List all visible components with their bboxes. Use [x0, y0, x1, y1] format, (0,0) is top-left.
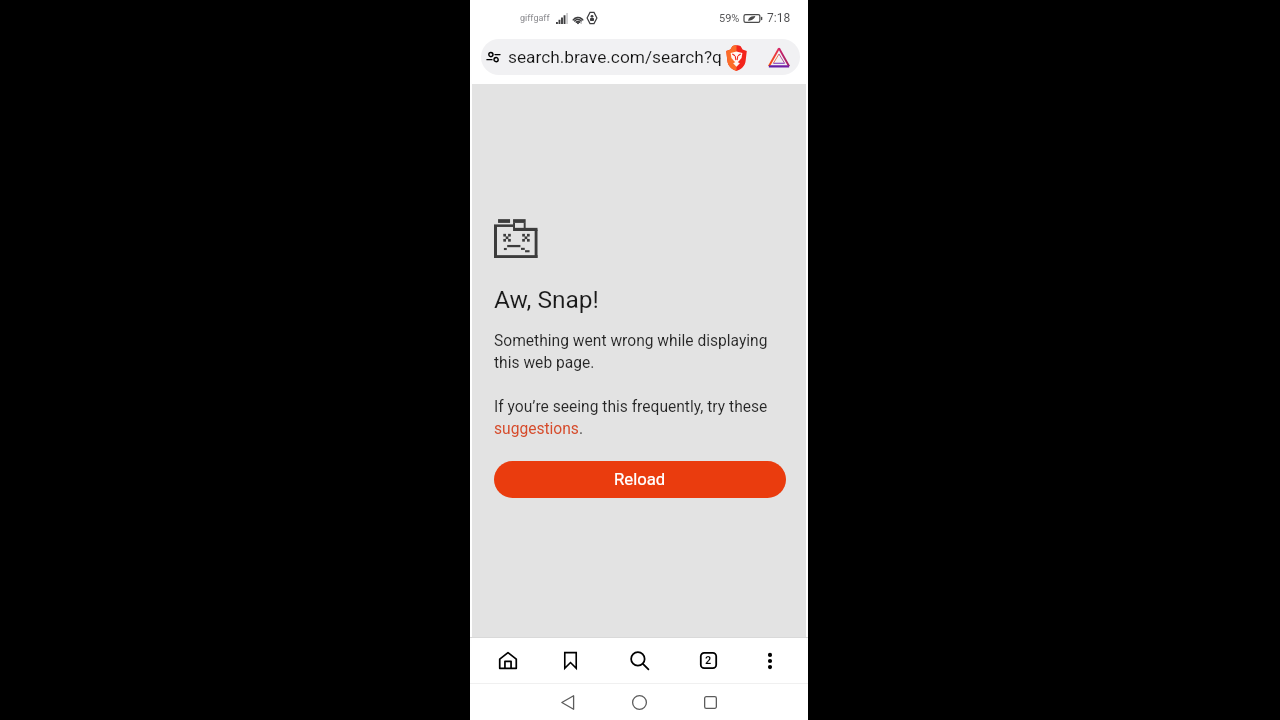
staticText: 2 — [705, 654, 712, 667]
staticText: 7:18 — [767, 11, 791, 25]
staticText: search.brave.com/search?q — [508, 47, 722, 67]
staticText: Something went wrong while displaying th… — [494, 332, 786, 372]
button[interactable]: Brave Rewards — [762, 39, 795, 72]
button[interactable]: search.brave.com/search?q — [481, 39, 726, 75]
button[interactable]: More options — [748, 638, 792, 683]
button[interactable]: Recents — [690, 684, 730, 720]
button[interactable]: Reload — [494, 461, 786, 498]
button[interactable]: Brave Shields — [720, 39, 753, 72]
staticText: Reload — [614, 470, 666, 490]
staticText: Aw, Snap! — [494, 285, 599, 314]
button[interactable]: Tabs — [686, 638, 730, 683]
staticText: giffgaff — [520, 13, 550, 24]
button[interactable]: If you’re seeing this frequently, try th… — [494, 398, 786, 438]
button[interactable]: Search — [617, 638, 661, 683]
button[interactable]: Bookmarks — [548, 638, 592, 683]
button[interactable]: Back — [548, 684, 588, 720]
button[interactable]: Home — [486, 638, 530, 683]
button[interactable]: Home — [619, 684, 659, 720]
staticText: 59% — [719, 12, 740, 25]
